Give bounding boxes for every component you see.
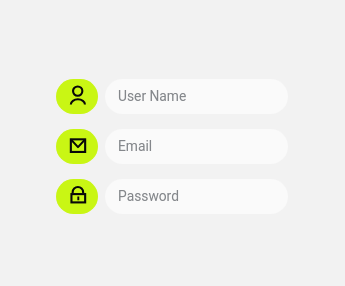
staticText: Email — [118, 138, 153, 154]
staticText: Password — [118, 188, 179, 204]
button[interactable]: User Name — [105, 79, 288, 114]
button[interactable]: Email — [105, 129, 288, 164]
staticText: User Name — [118, 88, 187, 104]
button[interactable]: User name — [56, 79, 98, 114]
button[interactable]: Password — [56, 179, 98, 214]
button[interactable]: Password — [105, 179, 288, 214]
button[interactable]: Email — [56, 129, 98, 164]
